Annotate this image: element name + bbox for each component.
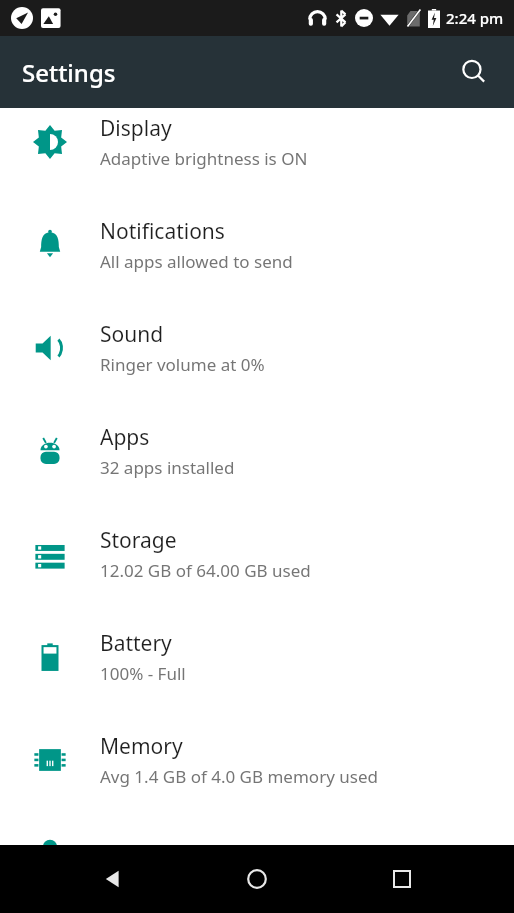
- button[interactable]: Recent apps: [369, 846, 435, 912]
- staticText: Battery: [100, 629, 172, 658]
- button[interactable]: Memory: [0, 708, 514, 811]
- staticText: Ringer volume at 0%: [100, 353, 265, 376]
- staticText: Notifications: [100, 217, 225, 246]
- staticText: 2:24 pm: [446, 8, 504, 28]
- staticText: Display: [100, 114, 172, 143]
- staticText: 32 apps installed: [100, 456, 235, 479]
- button[interactable]: Display: [0, 90, 514, 193]
- staticText: Sound: [100, 320, 164, 349]
- staticText: Apps: [100, 423, 150, 452]
- staticText: Adaptive brightness is ON: [100, 147, 308, 170]
- button[interactable]: Users: [0, 811, 514, 895]
- staticText: Storage: [100, 526, 177, 555]
- staticText: Avg 1.4 GB of 4.0 GB memory used: [100, 765, 378, 788]
- button[interactable]: Storage: [0, 502, 514, 605]
- button[interactable]: Home: [224, 846, 290, 912]
- button[interactable]: Search: [452, 50, 496, 94]
- staticText: 12.02 GB of 64.00 GB used: [100, 559, 311, 582]
- button[interactable]: Apps: [0, 399, 514, 502]
- staticText: Settings: [22, 56, 116, 89]
- staticText: Users: [100, 839, 156, 868]
- button[interactable]: Battery: [0, 605, 514, 708]
- staticText: Memory: [100, 732, 183, 761]
- button[interactable]: Notifications: [0, 193, 514, 296]
- staticText: 100% - Full: [100, 662, 186, 685]
- button[interactable]: Sound: [0, 296, 514, 399]
- staticText: All apps allowed to send: [100, 250, 293, 273]
- button[interactable]: Back: [79, 846, 145, 912]
